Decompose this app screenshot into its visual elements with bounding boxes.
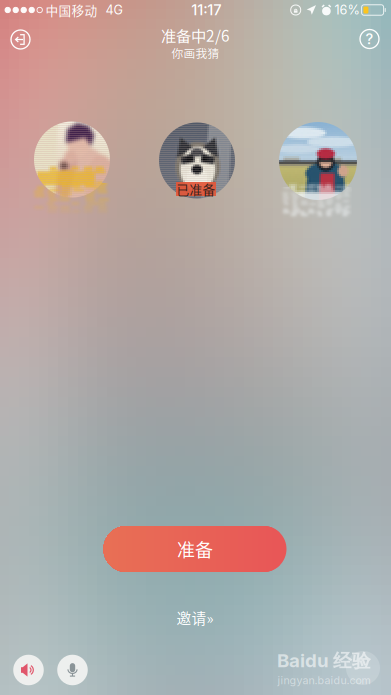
button[interactable]: 准备: [103, 526, 286, 572]
button[interactable]: Microphone: [57, 655, 88, 685]
staticText: 准备中2/6: [161, 24, 230, 46]
staticText: 4G: [105, 2, 122, 18]
staticText: 邀请»: [176, 607, 213, 628]
staticText: Baidu 经验: [277, 649, 371, 673]
button[interactable]: Speaker: [13, 655, 44, 685]
button[interactable]: Player 2 — ready: [159, 122, 235, 198]
staticText: 16%: [335, 2, 360, 18]
staticText: jingyan.baidu.com: [277, 674, 370, 687]
staticText: 11:17: [191, 1, 221, 19]
button[interactable]: Player 1: [34, 121, 110, 197]
button[interactable]: 邀请»: [159, 603, 231, 631]
button[interactable]: Leave room: [2, 21, 38, 57]
button[interactable]: Player 3: [279, 122, 357, 200]
staticText: 准备: [177, 536, 213, 562]
staticText: ?: [365, 30, 373, 48]
button[interactable]: Help: [351, 21, 387, 57]
staticText: 你画我猜: [171, 44, 219, 61]
staticText: 中国移动: [45, 1, 97, 19]
staticText: 已准备: [176, 180, 215, 198]
